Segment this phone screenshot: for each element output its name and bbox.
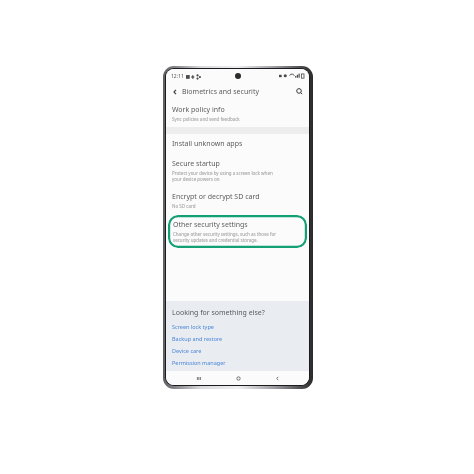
button[interactable]: Secure startup: [166, 154, 309, 187]
button[interactable]: Home: [231, 371, 245, 385]
staticText: Secure startup: [172, 159, 220, 169]
button[interactable]: Other security settings: [168, 215, 307, 248]
staticText: Protect your device by using a screen lo…: [172, 170, 273, 182]
staticText: Permission manager: [172, 359, 226, 366]
button[interactable]: Search: [293, 85, 306, 98]
staticText: Other security settings: [173, 220, 248, 230]
button[interactable]: Work policy info: [166, 100, 309, 127]
staticText: Sync policies and send feedback: [172, 116, 240, 122]
button[interactable]: Permission manager: [172, 359, 226, 366]
button[interactable]: Device care: [172, 347, 202, 354]
button[interactable]: Back: [270, 371, 284, 385]
staticText: Work policy info: [172, 105, 225, 115]
staticText: Backup and restore: [172, 335, 223, 342]
button[interactable]: Back: [168, 85, 181, 98]
staticText: Screen lock type: [172, 323, 214, 330]
staticText: Device care: [172, 347, 202, 354]
staticText: No SD card: [172, 203, 196, 209]
button[interactable]: Encrypt or decrypt SD card: [166, 187, 309, 214]
staticText: 12:11: [171, 73, 184, 80]
staticText: Change other security settings, such as …: [173, 231, 277, 243]
staticText: Looking for something else?: [172, 308, 265, 318]
staticText: Install unknown apps: [172, 139, 243, 149]
button[interactable]: Screen lock type: [172, 323, 214, 330]
button[interactable]: Install unknown apps: [166, 134, 309, 154]
staticText: Encrypt or decrypt SD card: [172, 192, 260, 202]
staticText: Biometrics and security: [182, 87, 259, 97]
button[interactable]: Backup and restore: [172, 335, 223, 342]
button[interactable]: Recent apps: [191, 371, 205, 385]
